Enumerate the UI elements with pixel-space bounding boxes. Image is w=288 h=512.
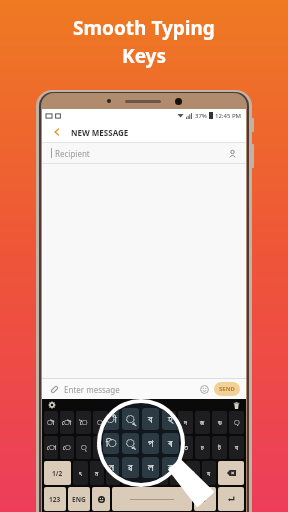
staticText: Recipient <box>55 148 90 159</box>
button[interactable]: চ <box>195 436 210 459</box>
staticText: ি <box>106 438 117 449</box>
button[interactable]: ৌ <box>60 411 74 434</box>
staticText: ী <box>114 419 121 426</box>
staticText: ম <box>95 470 99 477</box>
staticText: গ <box>191 470 195 477</box>
staticText: 1/2 <box>52 469 63 478</box>
staticText: ্ <box>81 444 87 451</box>
staticText: ৈ <box>80 419 88 426</box>
staticText: ৰ <box>168 438 173 449</box>
staticText: ু <box>115 444 121 451</box>
staticText: SEND <box>219 385 235 393</box>
button[interactable]: দ <box>178 411 193 434</box>
button[interactable]: Space <box>112 487 192 511</box>
staticText: Keys <box>122 43 166 69</box>
staticText: ু <box>126 438 135 449</box>
staticText: ী <box>106 414 117 425</box>
button[interactable]: ৰ <box>144 436 159 459</box>
staticText: ত <box>184 444 188 451</box>
staticText: প <box>133 444 137 451</box>
staticText: প <box>148 438 154 449</box>
staticText: ল <box>148 462 154 473</box>
button[interactable]: 1/2 <box>44 461 71 485</box>
button[interactable]: Settings <box>47 400 57 410</box>
staticText: ৎ <box>79 470 82 477</box>
staticText: , <box>204 494 206 504</box>
button[interactable]: Attach <box>48 383 60 395</box>
button[interactable]: হ <box>161 411 176 434</box>
staticText: ় <box>234 419 240 426</box>
staticText: ন <box>111 470 115 477</box>
button[interactable]: Back <box>50 125 64 139</box>
button[interactable]: Enter <box>218 487 244 511</box>
button[interactable]: ৗ <box>44 411 58 434</box>
staticText: হ <box>168 414 173 425</box>
button[interactable]: SEND <box>214 382 240 396</box>
button[interactable]: ম <box>90 461 104 485</box>
button[interactable]: Emoji <box>92 487 110 511</box>
staticText: য <box>207 470 211 477</box>
staticText: ENG <box>72 495 86 504</box>
button[interactable]: ENG <box>68 487 90 511</box>
button[interactable]: ূ <box>127 411 142 434</box>
button[interactable]: ় <box>229 411 244 434</box>
button[interactable]: ্ <box>76 436 91 459</box>
button[interactable]: গ <box>186 461 200 485</box>
button[interactable]: জ <box>195 411 210 434</box>
staticText: ূ <box>132 419 138 426</box>
staticText: জ <box>200 419 205 426</box>
button[interactable]: 123 <box>44 487 66 511</box>
staticText: ৱ <box>128 470 131 477</box>
staticText: ট <box>218 444 221 451</box>
staticText: ৰ <box>150 444 153 451</box>
staticText: ৰ <box>168 462 173 473</box>
button[interactable]: ব <box>144 411 159 434</box>
button[interactable]: ৰ <box>154 461 168 485</box>
button[interactable]: ল <box>138 461 152 485</box>
button[interactable]: ক <box>161 436 176 459</box>
button[interactable]: ো <box>44 436 58 459</box>
staticText: ব <box>148 414 153 425</box>
staticText: Smooth Typing <box>73 15 215 41</box>
button[interactable]: া <box>93 411 108 434</box>
button[interactable]: ট <box>212 436 227 459</box>
staticText: হ <box>167 419 171 426</box>
staticText: দ <box>184 419 187 426</box>
button[interactable]: ে <box>60 436 74 459</box>
button[interactable]: ৈ <box>76 411 91 434</box>
staticText: া <box>97 419 104 426</box>
button[interactable]: য <box>202 461 216 485</box>
staticText: ড <box>218 419 222 426</box>
staticText: য <box>235 444 239 451</box>
staticText: ৰ <box>160 470 163 477</box>
staticText: ব <box>150 419 153 426</box>
button[interactable]: ত <box>178 436 193 459</box>
staticText: ি <box>97 444 104 451</box>
button[interactable]: , <box>194 487 216 511</box>
button[interactable]: Backspace <box>218 461 244 485</box>
button[interactable]: ৱ <box>122 461 136 485</box>
staticText: 37% <box>195 112 207 120</box>
staticText: 12:45 PM <box>215 112 242 120</box>
button[interactable]: Emoji <box>198 383 210 395</box>
staticText: ে <box>63 444 71 451</box>
staticText: ক <box>167 444 171 451</box>
other: Contacts <box>228 149 237 158</box>
button[interactable]: প <box>127 436 142 459</box>
button[interactable]: Clear <box>231 400 241 410</box>
staticText: Enter message <box>64 384 120 395</box>
button[interactable]: ু <box>110 436 125 459</box>
button[interactable]: ি <box>93 436 108 459</box>
staticText: ৱ <box>128 462 133 473</box>
button[interactable]: ড <box>212 411 227 434</box>
button[interactable]: য <box>229 436 244 459</box>
staticText: ন <box>109 462 114 473</box>
button[interactable]: ন <box>106 461 120 485</box>
staticText: ৗ <box>47 419 55 426</box>
button[interactable]: স <box>170 461 184 485</box>
staticText: 123 <box>49 495 61 504</box>
button[interactable]: ৎ <box>73 461 88 485</box>
button[interactable]: Recipient <box>42 143 246 163</box>
button[interactable]: ী <box>110 411 125 434</box>
